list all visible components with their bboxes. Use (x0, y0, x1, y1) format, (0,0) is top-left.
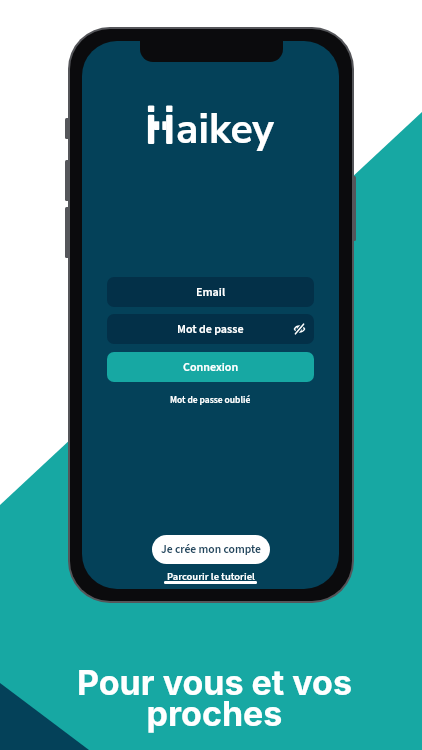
staticText: Parcourir le tutoriel (167, 569, 255, 584)
button[interactable]: Mot de passe oublié (170, 393, 251, 407)
staticText: Pour vous et vos proches (77, 662, 352, 735)
button[interactable]: Je crée mon compte (152, 535, 270, 564)
staticText: Email (196, 284, 226, 301)
other: Afficher le mot de passe (294, 324, 305, 334)
button[interactable]: Email (107, 277, 314, 307)
button[interactable]: Mot de passe (107, 314, 314, 344)
button[interactable]: Parcourir le tutoriel (164, 569, 257, 587)
staticText: Mot de passe (177, 321, 244, 338)
staticText: Je crée mon compte (161, 541, 261, 558)
staticText: Connexion (183, 359, 239, 376)
button[interactable]: Connexion (107, 352, 314, 382)
staticText: aikey (176, 102, 274, 158)
